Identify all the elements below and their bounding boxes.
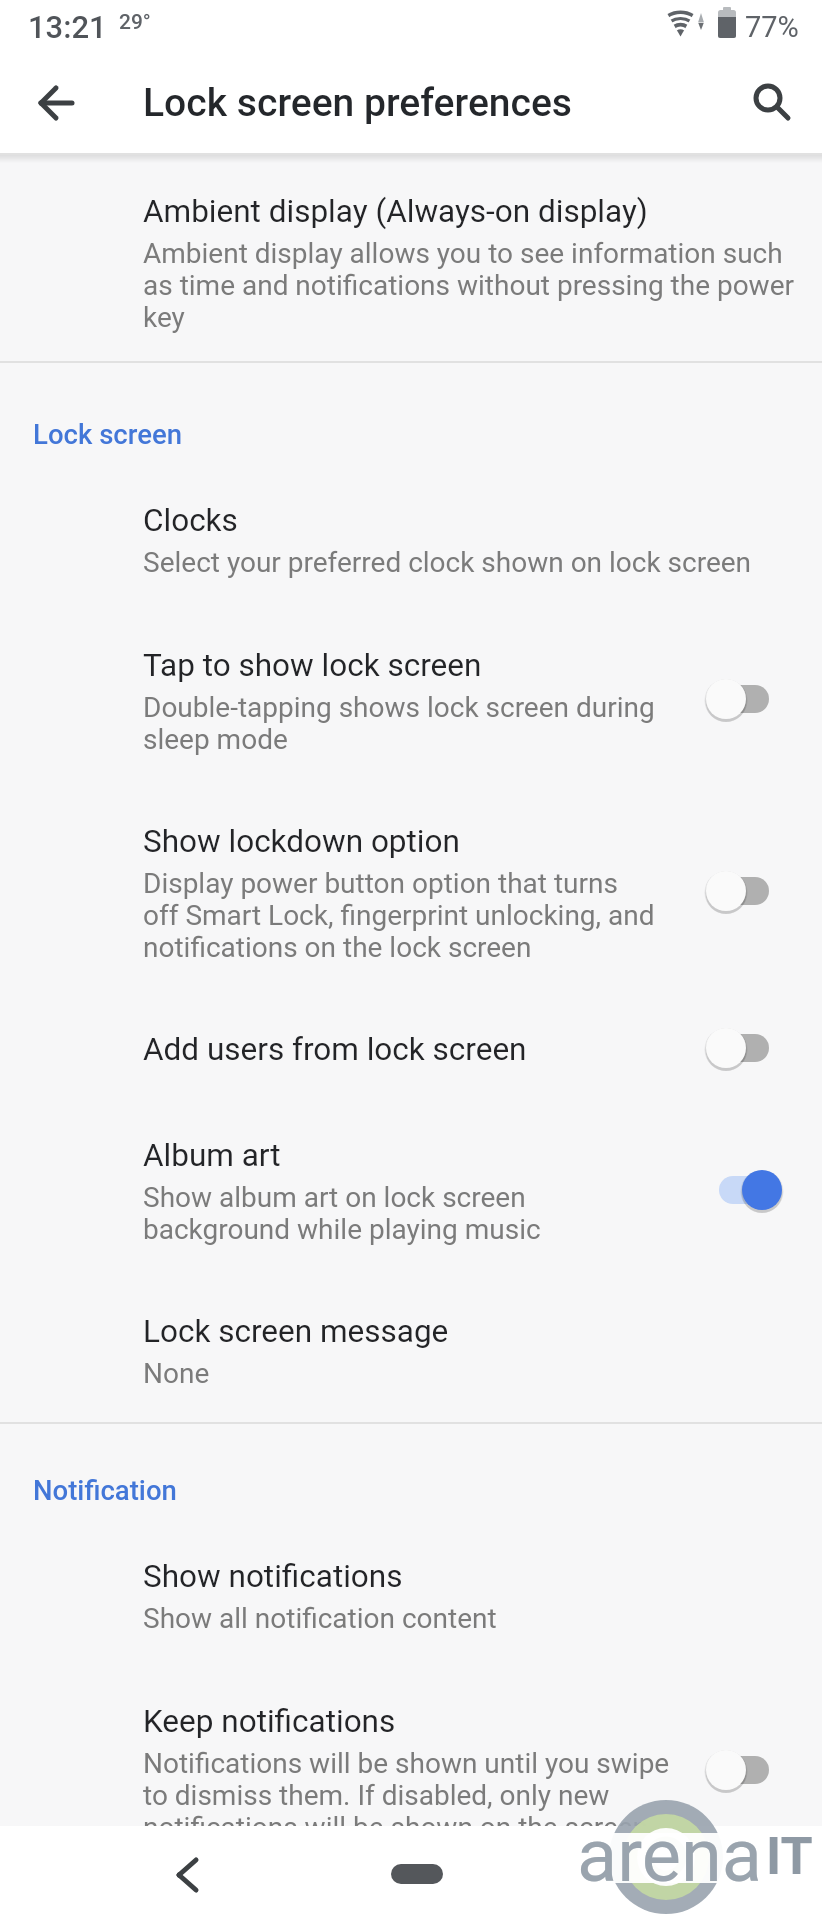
staticText: Clocks	[143, 502, 238, 539]
staticText: Show all notification content	[143, 1602, 497, 1635]
staticText: Lock screen preferences	[143, 80, 573, 126]
staticText: Notifications will be shown until you sw…	[143, 1747, 670, 1844]
staticText: arena	[577, 1812, 762, 1899]
staticText: 29°	[119, 10, 151, 35]
staticText: Add users from lock screen	[143, 1031, 527, 1068]
staticText: 13:21	[28, 9, 107, 45]
staticText: Keep notifications	[143, 1703, 396, 1740]
staticText: Tap to show lock screen	[143, 647, 482, 684]
staticText: Double-tapping shows lock screen during …	[143, 691, 655, 756]
staticText: Show notifications	[143, 1558, 403, 1595]
staticText: None	[143, 1357, 210, 1390]
staticText: Album art	[143, 1137, 281, 1174]
staticText: Select your preferred clock shown on loc…	[143, 546, 752, 579]
staticText: Display power button option that turns o…	[143, 867, 655, 964]
staticText: Show lockdown option	[143, 823, 460, 860]
staticText: Show album art on lock screen background…	[143, 1181, 541, 1246]
staticText: Lock screen	[33, 418, 182, 450]
staticText: IT	[766, 1826, 813, 1887]
staticText: Ambient display (Always-on display)	[143, 193, 648, 230]
staticText: Ambient display allows you to see inform…	[143, 237, 794, 334]
staticText: Notification	[33, 1474, 177, 1506]
staticText: Lock screen message	[143, 1313, 449, 1350]
staticText: 77%	[745, 10, 799, 44]
